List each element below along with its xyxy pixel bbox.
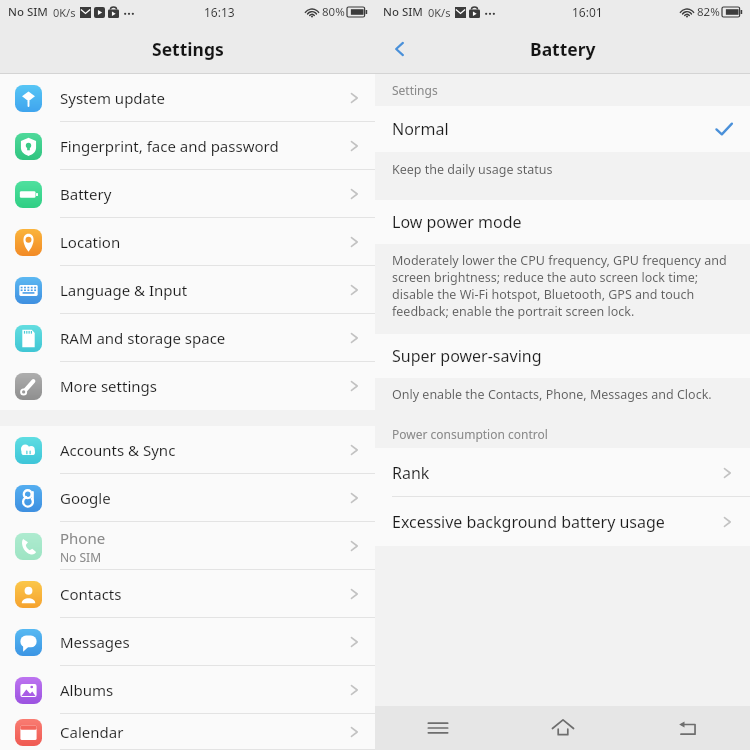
button[interactable]: Home (500, 706, 625, 750)
staticText: Language & Input (60, 280, 188, 300)
button[interactable]: Rank (375, 448, 750, 497)
button[interactable]: Contacts (0, 570, 375, 618)
staticText: No SIM (383, 4, 423, 20)
staticText: 16:01 (572, 4, 603, 20)
staticText: 0K/s (53, 5, 76, 20)
staticText: 82% (697, 4, 720, 20)
staticText: Google (60, 488, 111, 508)
button[interactable]: Messages (0, 618, 375, 666)
button[interactable]: Language & Input (0, 266, 375, 314)
button[interactable]: Albums (0, 666, 375, 714)
staticText: Settings (392, 82, 438, 98)
button[interactable]: Google (0, 474, 375, 522)
staticText: No SIM (60, 549, 102, 565)
staticText: Location (60, 232, 121, 252)
button[interactable]: Low power mode (375, 200, 750, 244)
button[interactable]: Accounts & Sync (0, 426, 375, 474)
button[interactable]: Fingerprint, face and password (0, 122, 375, 170)
staticText: Keep the daily usage status (392, 161, 553, 178)
staticText: Moderately lower the CPU frequency, GPU … (392, 252, 736, 320)
staticText: Calendar (60, 722, 124, 742)
staticText: Rank (392, 462, 430, 484)
staticText: Fingerprint, face and password (60, 136, 279, 156)
staticText: Messages (60, 632, 130, 652)
button[interactable]: Location (0, 218, 375, 266)
staticText: Settings (152, 37, 224, 61)
staticText: Excessive background battery usage (392, 511, 665, 533)
staticText: Albums (60, 680, 114, 700)
staticText: Only enable the Contacts, Phone, Message… (392, 386, 712, 403)
staticText: RAM and storage space (60, 328, 226, 348)
staticText: 80% (322, 4, 345, 20)
button[interactable]: Battery (0, 170, 375, 218)
staticText: System update (60, 88, 165, 108)
staticText: No SIM (8, 4, 48, 20)
staticText: Accounts & Sync (60, 440, 176, 460)
button[interactable]: Phone (0, 522, 375, 570)
staticText: 0K/s (428, 5, 451, 20)
button[interactable]: Super power-saving (375, 334, 750, 378)
button[interactable]: RAM and storage space (0, 314, 375, 362)
staticText: Super power-saving (392, 345, 542, 367)
button[interactable]: Calendar (0, 714, 375, 750)
staticText: Battery (60, 184, 112, 204)
staticText: More settings (60, 376, 157, 396)
staticText: Contacts (60, 584, 122, 604)
staticText: 16:13 (204, 4, 235, 20)
staticText: Low power mode (392, 211, 522, 233)
button[interactable]: Excessive background battery usage (375, 497, 750, 546)
staticText: Normal (392, 118, 449, 140)
button[interactable]: Back (625, 706, 750, 750)
button[interactable]: System update (0, 74, 375, 122)
staticText: Battery (530, 37, 596, 61)
button[interactable]: Back (375, 24, 425, 74)
button[interactable]: Menu (375, 706, 500, 750)
button[interactable]: More settings (0, 362, 375, 410)
staticText: Power consumption control (392, 426, 548, 442)
button[interactable]: Normal (375, 106, 750, 152)
staticText: Phone (60, 528, 106, 548)
